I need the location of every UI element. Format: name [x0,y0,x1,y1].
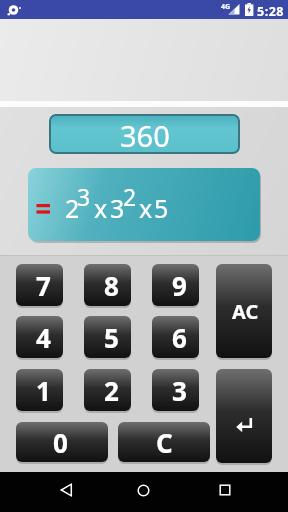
button[interactable]: 360 [49,114,240,154]
staticText: 7 [36,268,51,303]
staticText: 2 [123,181,137,212]
button[interactable]: 2 [84,369,131,411]
staticText: 4G [221,2,231,12]
staticText: 5:28 [257,3,284,20]
button[interactable]: 1 [16,369,63,411]
button[interactable]: 7 [16,264,63,306]
button[interactable]: 9 [152,264,199,306]
button[interactable] [211,476,239,504]
staticText: 6 [172,320,187,355]
staticText: C [156,425,173,460]
button[interactable]: 4 [16,316,63,358]
button[interactable]: AC [216,264,272,358]
button[interactable]: 5 [84,316,131,358]
button[interactable]: 8 [84,264,131,306]
button[interactable] [216,369,272,463]
staticText: x [94,191,108,225]
staticText: 2 [65,191,80,225]
staticText: 2 [104,373,119,408]
staticText: 3 [172,373,187,408]
staticText: 8 [104,268,119,303]
button[interactable]: 6 [152,316,199,358]
staticText: 4 [36,320,51,355]
button[interactable]: 3 [152,369,199,411]
button[interactable]: C [118,422,210,462]
button[interactable]: 2 [28,168,260,241]
staticText: 3 [110,191,125,225]
button[interactable]: 0 [16,422,108,462]
button[interactable] [52,476,80,504]
staticText: 1 [36,373,51,408]
staticText: 360 [120,116,170,154]
staticText: 3 [77,181,91,212]
button[interactable] [129,476,157,504]
staticText: 5 [154,191,169,225]
staticText: x [139,191,153,225]
staticText: 5 [104,320,119,355]
staticText: 9 [172,268,187,303]
staticText: 0 [53,425,68,460]
staticText: AC [232,298,259,325]
